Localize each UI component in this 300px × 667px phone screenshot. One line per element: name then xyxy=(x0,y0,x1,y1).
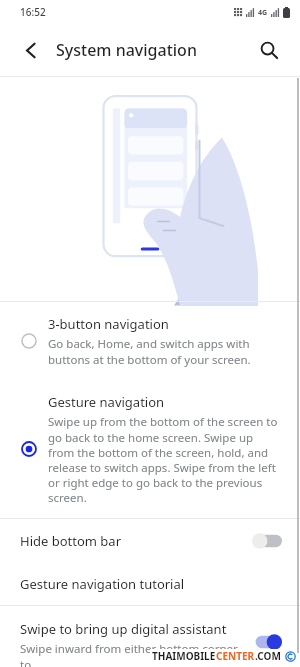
button[interactable]: Hide bottom bar xyxy=(0,519,300,563)
staticText: Go back, Home, and switch apps with butt… xyxy=(48,336,280,367)
staticText: Swipe up from the bottom of the screen t… xyxy=(48,414,280,505)
staticText: 16:52 xyxy=(20,5,46,19)
staticText: Swipe inward from either bottom corner t… xyxy=(20,641,244,667)
staticText: 3-button navigation xyxy=(48,315,169,333)
button[interactable]: Back xyxy=(14,33,48,67)
staticText: CENTER xyxy=(216,649,255,663)
button[interactable]: Gesture navigation tutorial xyxy=(0,563,300,605)
button[interactable]: Search xyxy=(252,33,286,67)
staticText: Gesture navigation xyxy=(48,393,165,411)
button[interactable]: Swipe to bring up digital assistant xyxy=(0,606,300,667)
button[interactable]: Gesture navigation xyxy=(0,380,300,518)
button[interactable]: 3-button navigation xyxy=(0,302,300,380)
staticText: Gesture navigation tutorial xyxy=(20,575,185,593)
staticText: THAIMOBILE xyxy=(152,649,216,663)
staticText: Hide bottom bar xyxy=(20,532,121,550)
staticText: 4G xyxy=(258,8,268,18)
staticText: Swipe to bring up digital assistant xyxy=(20,620,227,638)
staticText: .COM xyxy=(255,649,281,663)
staticText: System navigation xyxy=(56,39,197,61)
